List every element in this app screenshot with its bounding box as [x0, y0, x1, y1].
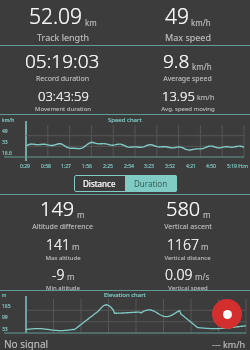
staticText: Vertical speed: [168, 284, 208, 290]
staticText: km/h: [2, 117, 15, 124]
staticText: 4:21: [186, 163, 196, 170]
staticText: km/h: [197, 93, 215, 103]
staticText: 52.09: [29, 2, 83, 31]
staticText: m: [201, 241, 209, 252]
staticText: 49: [165, 2, 189, 31]
staticText: 3:52: [165, 163, 175, 170]
staticText: 580: [166, 195, 201, 222]
staticText: 3:23: [144, 163, 154, 170]
staticText: Movement duration: [35, 105, 91, 113]
staticText: km/h: [191, 17, 211, 28]
staticText: m: [203, 209, 211, 220]
staticText: 16.6: [2, 150, 12, 157]
staticText: 2:54: [124, 163, 134, 170]
staticText: Min altitude: [46, 284, 80, 290]
staticText: Elevation chart: [104, 291, 146, 299]
staticText: 05:19:03: [25, 48, 100, 74]
staticText: km: [85, 17, 97, 28]
staticText: 0:29: [20, 163, 30, 170]
staticText: Altitude difference: [32, 222, 93, 232]
staticText: 13.95: [162, 87, 195, 105]
staticText: m: [67, 271, 75, 282]
staticText: 99: [2, 314, 8, 321]
staticText: 1:56: [82, 163, 92, 170]
staticText: 03:43:59: [38, 87, 89, 105]
staticText: 2:25: [103, 163, 113, 170]
staticText: km/h: [192, 61, 212, 72]
staticText: 5:19 H:m: [227, 163, 248, 170]
staticText: Record duration: [36, 74, 89, 84]
staticText: Avg. speed moving: [161, 105, 215, 113]
staticText: Vertical ascent: [164, 222, 212, 232]
staticText: 9.8: [163, 48, 190, 74]
staticText: m: [72, 241, 80, 252]
staticText: Vertical distance: [164, 254, 211, 262]
staticText: Average speed: [163, 74, 212, 84]
staticText: Max altitude: [45, 254, 81, 262]
staticText: 0:58: [41, 163, 51, 170]
staticText: No signal: [4, 337, 49, 350]
staticText: 1167: [167, 235, 199, 254]
staticText: 49: [2, 128, 8, 135]
staticText: m/s: [195, 271, 210, 282]
staticText: 0.09: [165, 265, 193, 284]
staticText: 1:27: [61, 163, 71, 170]
staticText: 141: [46, 235, 70, 254]
button[interactable]: Start recording: [212, 299, 242, 329]
button[interactable]: Duration: [125, 175, 177, 192]
button[interactable]: Distance: [74, 175, 125, 192]
staticText: Duration: [134, 178, 168, 189]
staticText: --- km/h: [212, 338, 246, 350]
staticText: Track length: [37, 31, 89, 43]
staticText: m: [2, 292, 7, 298]
staticText: 4:50: [206, 163, 216, 170]
staticText: -9: [52, 265, 65, 284]
staticText: 149: [40, 195, 75, 222]
staticText: Max speed: [165, 31, 211, 43]
staticText: Distance: [83, 178, 116, 189]
staticText: 165: [2, 303, 11, 310]
staticText: 33: [2, 139, 8, 146]
staticText: Speed chart: [108, 116, 142, 124]
staticText: m: [77, 209, 85, 220]
staticText: 33: [2, 326, 8, 333]
